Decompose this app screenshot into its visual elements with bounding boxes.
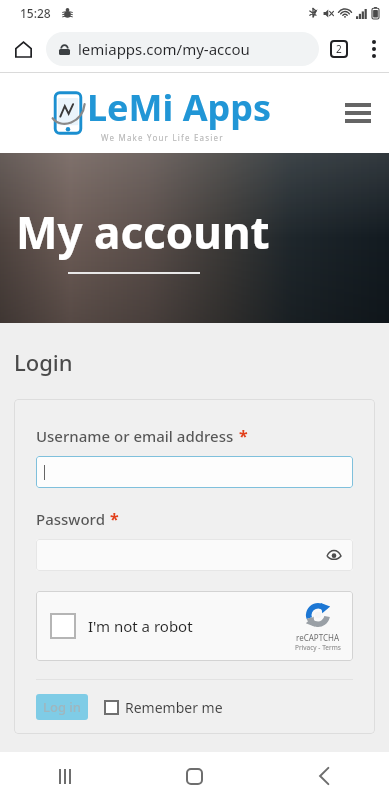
staticText: 2 [336,42,342,56]
button[interactable]: Tabs, 2 open [319,26,359,72]
button[interactable]: lemiapps.com/my-accou [46,32,319,66]
other: Show password [327,551,341,560]
staticText: Privacy - Terms [295,643,341,652]
staticText: * [239,425,248,447]
button[interactable]: Recent apps [0,752,129,800]
staticText: 15:28 [20,5,51,21]
button[interactable]: I'm not a robot [36,591,353,661]
staticText: Log in [43,698,81,716]
staticText: My account [16,202,270,262]
staticText: lemiapps.com/my-accou [78,39,250,59]
staticText: Login [14,347,73,377]
staticText: Remember me [125,698,223,717]
staticText: * [110,508,119,530]
button[interactable]: More options [359,26,389,72]
staticText: We Make Your Life Easier [101,132,224,143]
button[interactable]: Log in [36,694,88,720]
staticText: I'm not a robot [88,616,193,636]
staticText: Password [36,509,105,529]
staticText: LeMi Apps [87,83,272,132]
button[interactable]: Home [0,26,46,72]
button[interactable] [36,456,353,488]
button[interactable]: Show password [36,539,353,571]
button[interactable]: Back [259,752,389,800]
button[interactable]: Menu [339,97,377,129]
staticText: reCAPTCHA [296,632,340,643]
staticText: Username or email address [36,426,234,446]
button[interactable]: Remember me [104,698,223,717]
button[interactable]: Home [129,752,259,800]
